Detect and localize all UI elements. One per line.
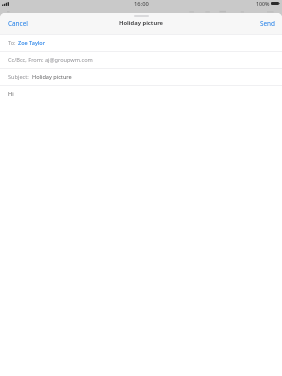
staticText: Hi xyxy=(8,90,14,98)
staticText: Holiday picture xyxy=(119,19,164,27)
staticText: Holiday picture xyxy=(32,73,72,81)
button[interactable]: Subject: xyxy=(0,69,282,85)
staticText: Cc/Bcc, From: aj@groupwm.com xyxy=(8,56,93,64)
other: Battery 100 percent xyxy=(271,2,280,5)
staticText: 100% xyxy=(256,0,270,7)
button[interactable]: Cc/Bcc, From: aj@groupwm.com xyxy=(0,52,282,68)
button[interactable]: Send xyxy=(253,13,282,34)
staticText: Zoe Taylor xyxy=(18,39,45,46)
staticText: To: xyxy=(8,39,16,47)
button[interactable]: To: xyxy=(0,35,282,51)
staticText: Send xyxy=(260,19,275,28)
other: Signal strength xyxy=(2,2,9,6)
staticText: Subject: xyxy=(8,73,29,81)
staticText: 16:00 xyxy=(134,0,149,8)
button[interactable]: Cancel xyxy=(0,13,36,34)
staticText: Cancel xyxy=(8,19,28,28)
